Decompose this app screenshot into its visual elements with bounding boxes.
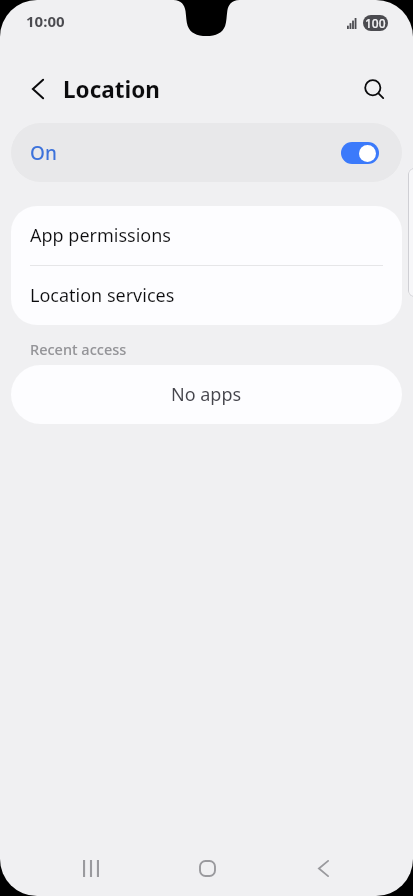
button[interactable]: Home	[149, 840, 265, 896]
button[interactable]: Back	[265, 840, 381, 896]
button[interactable]: Navigate up	[14, 65, 62, 113]
button[interactable]: No apps	[11, 365, 402, 424]
staticText: No apps	[171, 382, 242, 407]
staticText: Recent access	[30, 339, 127, 359]
button[interactable]: App permissions	[11, 206, 402, 265]
staticText: 100	[365, 15, 386, 31]
button[interactable]: On	[11, 123, 402, 182]
staticText: Location services	[30, 283, 175, 308]
button[interactable]: Recent apps	[32, 840, 149, 896]
staticText: 10:00	[26, 11, 65, 31]
staticText: App permissions	[30, 223, 171, 248]
button[interactable]: Location services	[11, 266, 402, 325]
staticText: On	[30, 140, 57, 166]
staticText: Location	[63, 74, 160, 105]
button[interactable]: Search	[352, 65, 400, 113]
